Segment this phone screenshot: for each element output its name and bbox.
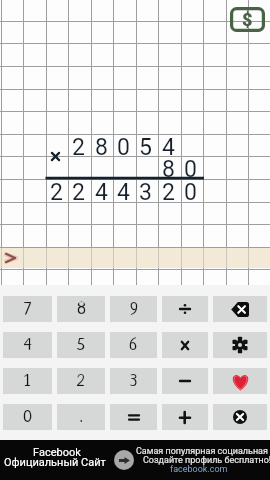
staticText: 3 [139,179,152,206]
staticText: 6 [129,336,138,355]
staticText: 2 [162,179,175,206]
staticText: Facebook [33,446,81,459]
button[interactable]: bksp [213,296,267,322]
button[interactable]: 9 [110,296,157,322]
button[interactable]: 2 [57,368,105,394]
button[interactable]: 5 [57,332,105,358]
staticText: 4 [117,179,130,206]
button[interactable]: 6 [110,332,157,358]
button[interactable]: heart [213,368,267,394]
button[interactable] [162,296,208,322]
staticText: Официальный Сайт [4,456,106,469]
staticText: 0 [117,134,130,161]
staticText: 5 [139,134,152,161]
staticText: 4 [162,134,175,161]
staticText: $ [242,9,253,30]
staticText: 3 [130,372,138,391]
button[interactable]: 8 [57,296,105,322]
button[interactable]: Remove ads [230,7,265,32]
staticText: 9 [130,300,138,319]
staticText: 8 [77,300,86,319]
button[interactable]: 1 [3,368,52,394]
button[interactable]: close [213,404,267,430]
staticText: 2 [77,372,85,391]
button[interactable]: gear [213,332,267,358]
button[interactable] [162,404,208,430]
button[interactable] [162,332,208,358]
staticText: 8 [162,156,175,183]
button[interactable]: 0 [3,404,52,430]
staticText: 2 [72,179,85,206]
button[interactable]: 3 [110,368,157,394]
button[interactable] [162,368,208,394]
staticText: 0 [184,179,197,206]
staticText: Создайте профиль бесплатно! [143,455,270,466]
staticText: 7 [24,300,31,319]
button[interactable]: Facebook [0,440,270,480]
staticText: 2 [50,179,63,206]
button[interactable]: 7 [3,296,52,322]
staticText: 2 [72,134,85,161]
staticText: 0 [184,156,197,183]
staticText: 0 [23,408,33,427]
staticText: Самая популярная социальная [136,446,268,457]
button[interactable]: 4 [3,332,52,358]
staticText: facebook.com [170,464,228,475]
staticText: 4 [95,179,108,206]
button[interactable]: . [57,404,105,430]
button[interactable] [110,404,157,430]
staticText: 1 [24,372,31,391]
staticText: 8 [95,134,108,161]
staticText: 4 [24,336,32,355]
staticText: . [80,408,83,427]
staticText: 5 [77,336,85,355]
